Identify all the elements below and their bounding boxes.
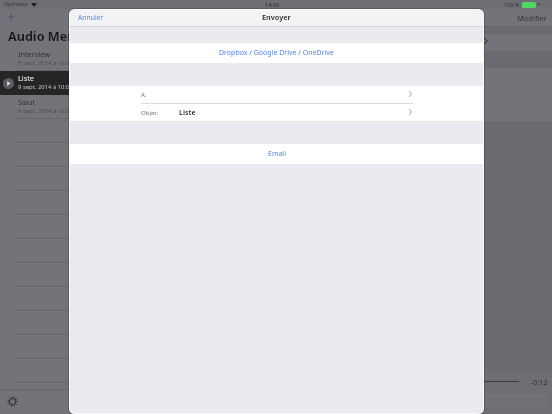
staticText: Annuler [78,13,104,22]
staticText: -0:12 [531,377,548,387]
staticText: 9 sept. 2014 à 10:0 [18,83,70,91]
button[interactable]: Objet: [70,104,483,121]
staticText: Modifier [517,13,547,23]
staticText: 14:38 [265,1,280,8]
staticText: Dropbox / Google Drive / OneDrive [219,48,334,58]
staticText: 100 % [504,1,520,8]
button[interactable]: Liste [0,71,69,95]
button[interactable]: Interview [0,47,69,71]
button[interactable]: À: [70,86,483,103]
button[interactable]: Annuler [78,13,104,22]
staticText: À: [141,91,147,99]
staticText: Liste [18,73,34,83]
staticText: Opérateur [4,1,29,8]
staticText: 9 sept. 2014 à 10:0 [18,59,70,67]
staticText: Email [268,149,286,159]
staticText: 9 sept. 2014 à 10:0 [18,107,70,115]
button[interactable]: Settings [4,393,20,409]
button[interactable]: Salut [0,95,69,119]
staticText: Salut [18,97,36,107]
staticText: Audio Memos [8,28,94,45]
staticText: Interview [18,49,51,59]
button[interactable]: Dropbox / Google Drive / OneDrive [70,43,483,63]
staticText: Objet: [141,109,159,117]
button[interactable]: Email [70,144,483,164]
staticText: Envoyer [262,12,291,22]
staticText: Liste [179,108,196,118]
button[interactable]: New memo [2,9,19,25]
